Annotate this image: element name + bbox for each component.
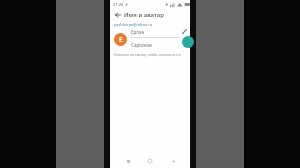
button[interactable]: Сохранить <box>182 36 194 48</box>
button[interactable]: Обзор <box>123 156 133 166</box>
button[interactable]: Главный экран <box>145 156 155 166</box>
staticText: Имя и аватар <box>124 11 164 19</box>
staticText: E <box>119 35 123 45</box>
staticText: Нажмите на аватар, чтобы изменить его <box>114 52 181 57</box>
staticText: Сарсенов <box>131 42 152 48</box>
button[interactable]: Ерлан <box>131 29 180 38</box>
staticText: 21:28 <box>113 2 124 7</box>
button[interactable]: yashkerov@inbox.ru <box>114 22 153 27</box>
button[interactable]: Редактировать <box>181 28 188 35</box>
button[interactable]: Сарсенов <box>131 42 180 49</box>
button[interactable]: Аватар <box>114 33 127 46</box>
staticText: Ерлан <box>131 29 145 35</box>
button[interactable]: Назад <box>168 156 178 166</box>
button[interactable]: Назад <box>113 10 122 19</box>
